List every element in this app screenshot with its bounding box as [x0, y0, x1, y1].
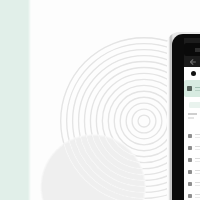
- button[interactable]: [184, 80, 200, 97]
- button[interactable]: Profile: [191, 71, 196, 76]
- button[interactable]: [188, 112, 200, 119]
- button[interactable]: [188, 154, 200, 166]
- button[interactable]: [188, 142, 200, 154]
- button[interactable]: Media: [184, 43, 200, 56]
- button[interactable]: [188, 190, 200, 200]
- button[interactable]: [188, 166, 200, 178]
- button[interactable]: [188, 130, 200, 142]
- button[interactable]: [188, 178, 200, 190]
- button[interactable]: Back: [189, 58, 197, 66]
